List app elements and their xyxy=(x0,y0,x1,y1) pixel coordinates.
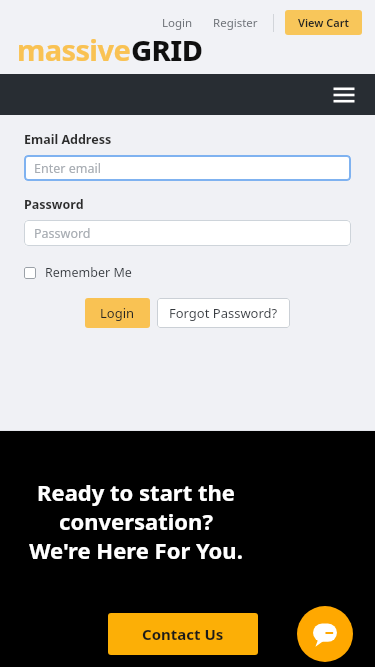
staticText: Login xyxy=(162,15,193,31)
staticText: Contact Us xyxy=(142,624,224,644)
button[interactable]: Enter email xyxy=(24,155,351,181)
staticText: GRID xyxy=(131,30,203,69)
staticText: Register xyxy=(213,15,258,31)
button[interactable]: massive xyxy=(17,30,203,69)
button[interactable]: Login xyxy=(156,12,199,34)
button[interactable]: Open menu xyxy=(331,82,357,108)
staticText: Enter email xyxy=(34,160,101,177)
staticText: Login xyxy=(100,304,135,322)
button[interactable]: Contact Us xyxy=(108,613,258,655)
staticText: Password xyxy=(34,225,91,242)
button[interactable]: Forgot Password? xyxy=(157,298,290,328)
staticText: Remember Me xyxy=(45,264,132,281)
button[interactable]: Remember Me xyxy=(24,262,132,283)
staticText: Forgot Password? xyxy=(169,304,278,322)
button[interactable]: View Cart xyxy=(285,10,362,35)
button[interactable]: Login xyxy=(85,298,150,328)
staticText: massive xyxy=(17,30,131,69)
button[interactable]: Register xyxy=(207,12,264,34)
staticText: Ready to start the conversation? We're H… xyxy=(12,477,260,565)
staticText: Email Address xyxy=(24,131,112,148)
staticText: View Cart xyxy=(298,15,349,30)
button[interactable]: Password xyxy=(24,220,351,246)
button[interactable]: Open chat xyxy=(297,606,353,662)
staticText: Password xyxy=(24,196,84,213)
